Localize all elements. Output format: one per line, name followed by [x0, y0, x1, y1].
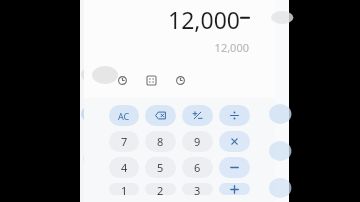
- button[interactable]: 8: [145, 131, 176, 152]
- staticText: 12,000: [214, 40, 249, 55]
- button[interactable]: 3: [182, 183, 213, 195]
- staticText: 9: [194, 134, 201, 149]
- staticText: 5: [157, 160, 164, 175]
- staticText: 6: [194, 160, 201, 175]
- staticText: 12,000: [168, 4, 240, 35]
- button[interactable]: Toggle sign: [182, 105, 213, 126]
- button[interactable]: 1: [109, 183, 139, 195]
- button[interactable]: Divide: [219, 105, 250, 126]
- staticText: 8: [157, 134, 164, 149]
- button[interactable]: AC: [109, 105, 139, 126]
- button[interactable]: 6: [182, 157, 213, 178]
- button[interactable]: History: [114, 72, 130, 88]
- button[interactable]: Recent: [172, 72, 188, 88]
- button[interactable]: 2: [145, 183, 176, 195]
- button[interactable]: Multiply: [219, 131, 250, 152]
- staticText: 2: [157, 183, 164, 195]
- button[interactable]: Subtract: [219, 157, 250, 178]
- button[interactable]: 4: [109, 157, 139, 178]
- button[interactable]: 12,000: [84, 0, 275, 60]
- button[interactable]: 7: [109, 131, 139, 152]
- button[interactable]: Backspace: [145, 105, 176, 126]
- button[interactable]: Add: [219, 183, 250, 195]
- button[interactable]: 9: [182, 131, 213, 152]
- staticText: AC: [118, 110, 130, 122]
- button[interactable]: 5: [145, 157, 176, 178]
- button[interactable]: Unit converter: [143, 72, 159, 88]
- staticText: 7: [121, 134, 128, 149]
- staticText: 4: [121, 160, 128, 175]
- staticText: 3: [194, 183, 201, 195]
- staticText: 1: [121, 183, 128, 195]
